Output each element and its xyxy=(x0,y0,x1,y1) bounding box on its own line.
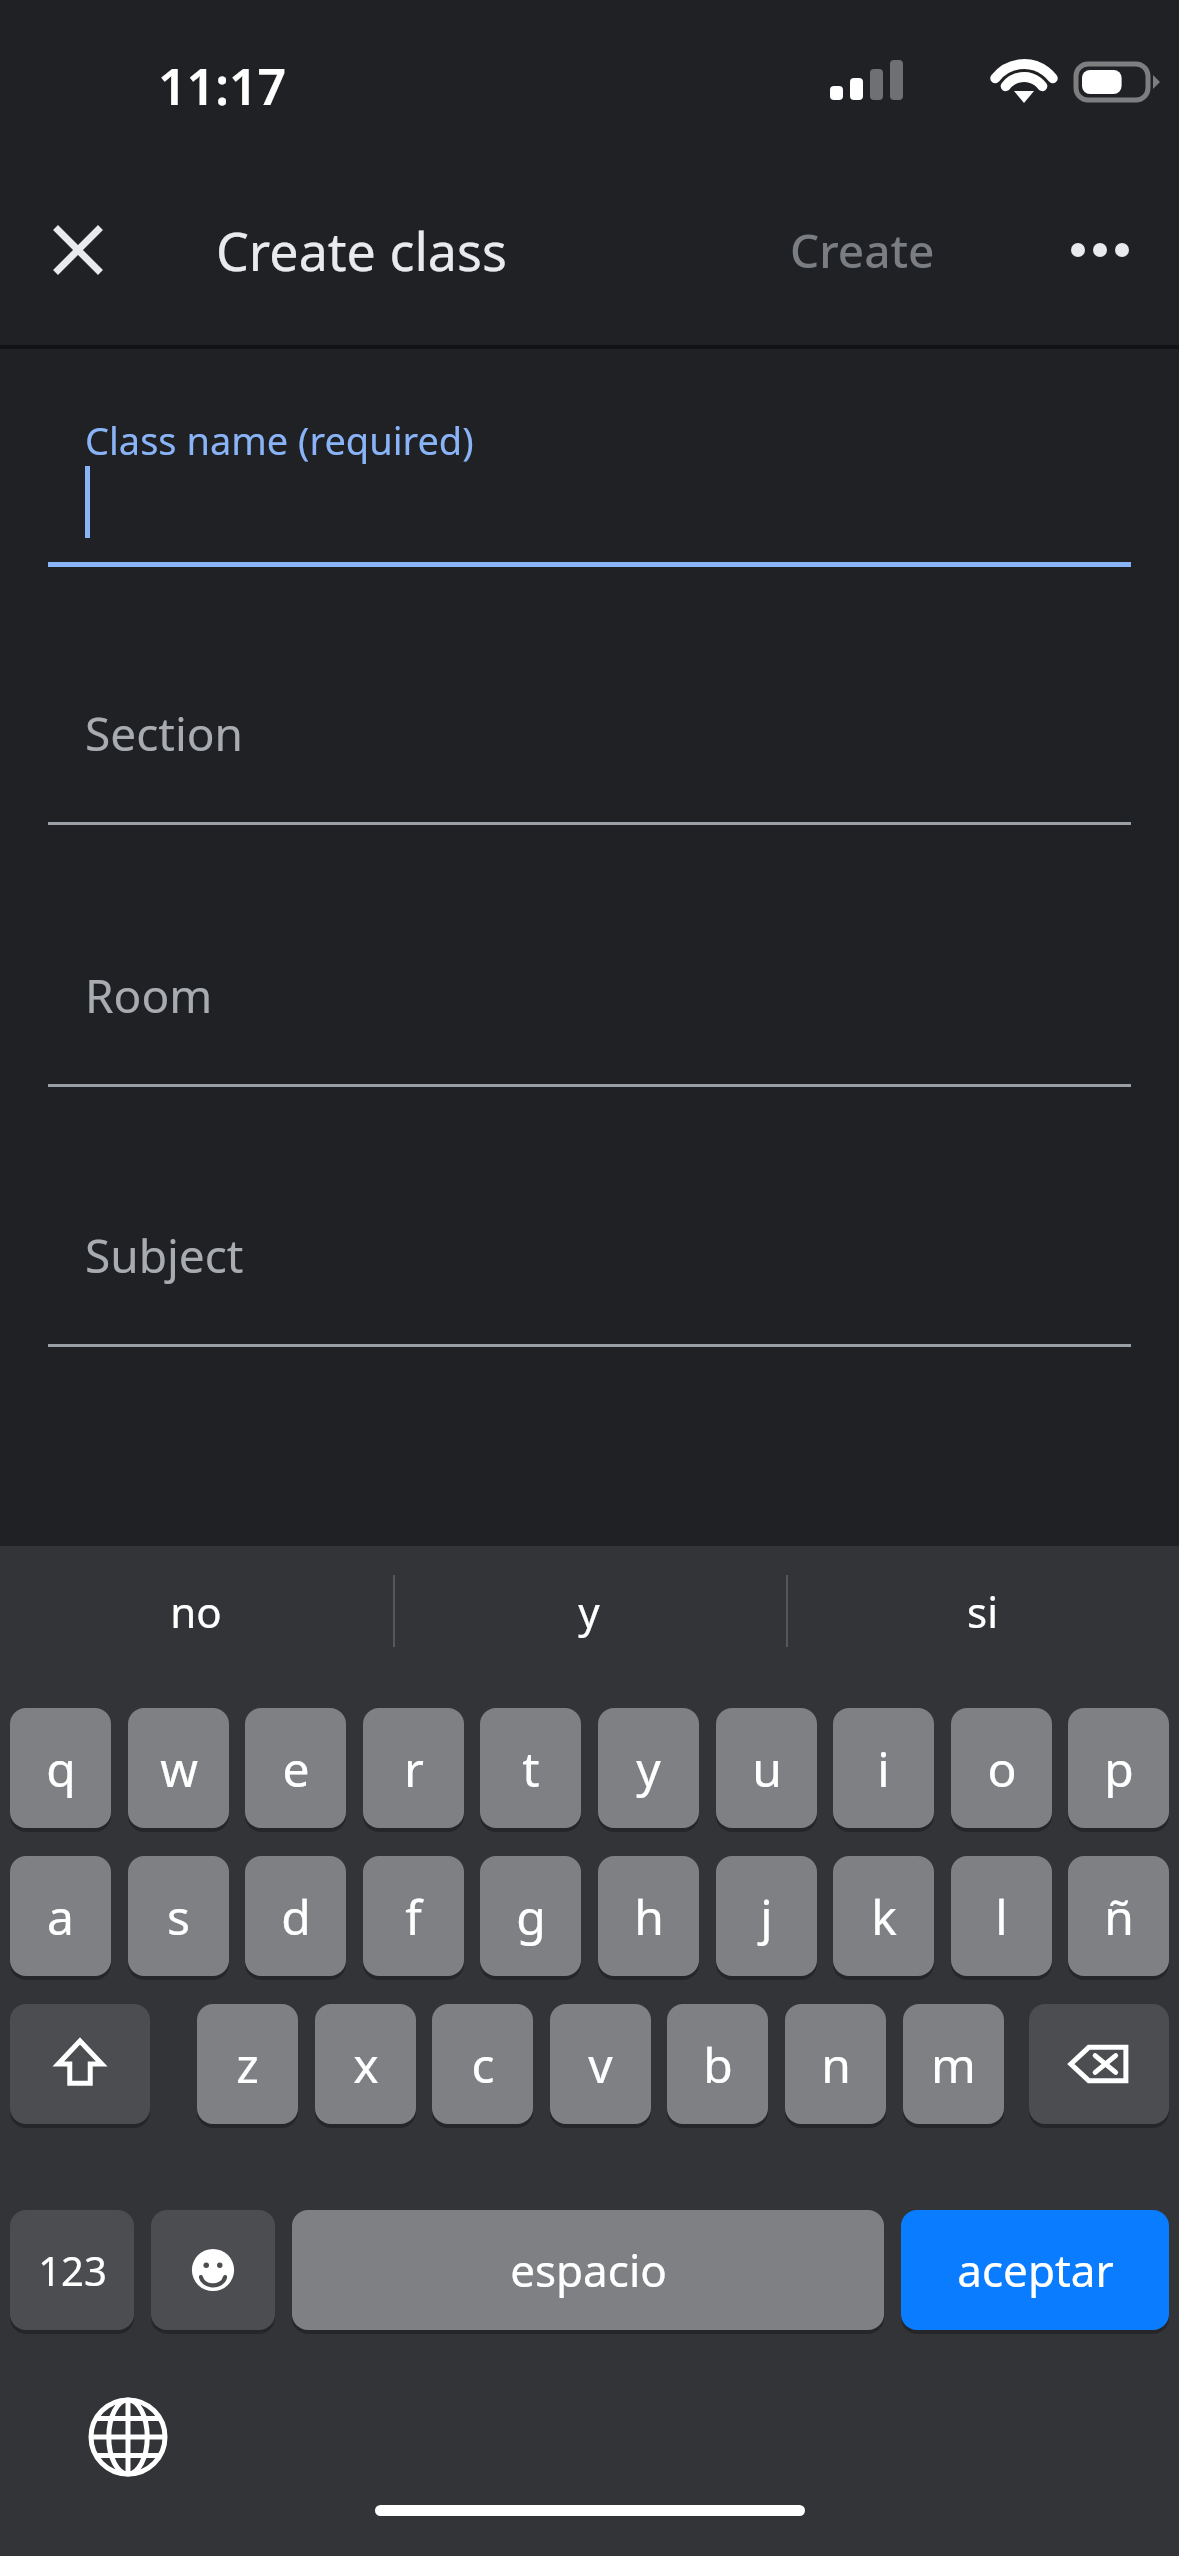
staticText: g xyxy=(516,1884,546,1949)
button[interactable]: Create xyxy=(790,200,970,300)
button[interactable]: s xyxy=(128,1856,229,1976)
staticText: d xyxy=(281,1884,311,1949)
button[interactable]: x xyxy=(315,2004,416,2124)
button[interactable] xyxy=(48,1162,1131,1364)
button[interactable]: q xyxy=(10,1708,111,1828)
staticText: v xyxy=(588,2032,613,2097)
button[interactable]: u xyxy=(716,1708,817,1828)
staticText: ñ xyxy=(1104,1884,1134,1949)
button[interactable] xyxy=(48,640,1131,842)
button[interactable]: Backspace xyxy=(1029,2004,1169,2124)
staticText: 11:17 xyxy=(158,52,287,112)
button[interactable]: r xyxy=(363,1708,464,1828)
button[interactable]: j xyxy=(716,1856,817,1976)
staticText: k xyxy=(871,1884,897,1949)
button[interactable]: y xyxy=(598,1708,699,1828)
button[interactable]: Shift xyxy=(10,2004,150,2124)
staticText: espacio xyxy=(510,2240,667,2300)
button[interactable]: ñ xyxy=(1068,1856,1169,1976)
staticText: Room xyxy=(85,964,213,1027)
staticText: p xyxy=(1104,1736,1134,1801)
button[interactable]: Emoji xyxy=(151,2210,275,2330)
staticText: c xyxy=(471,2032,495,2097)
staticText: x xyxy=(353,2032,379,2097)
button[interactable]: p xyxy=(1068,1708,1169,1828)
staticText: a xyxy=(47,1884,74,1949)
button[interactable]: d xyxy=(245,1856,346,1976)
staticText: q xyxy=(46,1736,76,1801)
button[interactable]: h xyxy=(598,1856,699,1976)
staticText: f xyxy=(405,1884,422,1949)
button[interactable]: aceptar xyxy=(901,2210,1169,2330)
button[interactable]: m xyxy=(903,2004,1004,2124)
staticText: l xyxy=(995,1884,1008,1949)
staticText: h xyxy=(634,1884,664,1949)
button[interactable]: l xyxy=(951,1856,1052,1976)
staticText: 123 xyxy=(38,2243,107,2297)
staticText: o xyxy=(987,1736,1017,1801)
staticText: i xyxy=(877,1736,890,1801)
button[interactable]: e xyxy=(245,1708,346,1828)
staticText: j xyxy=(760,1884,773,1949)
staticText: z xyxy=(236,2032,259,2097)
button[interactable]: b xyxy=(667,2004,768,2124)
staticText: s xyxy=(167,1884,190,1949)
button[interactable]: v xyxy=(550,2004,651,2124)
staticText: si xyxy=(967,1583,998,1640)
staticText: y xyxy=(636,1736,661,1801)
button[interactable]: a xyxy=(10,1856,111,1976)
button[interactable]: Close xyxy=(28,200,128,300)
button[interactable]: no xyxy=(16,1556,376,1666)
staticText: b xyxy=(703,2032,733,2097)
button[interactable]: espacio xyxy=(292,2210,884,2330)
button[interactable]: n xyxy=(785,2004,886,2124)
button[interactable]: f xyxy=(363,1856,464,1976)
staticText: t xyxy=(522,1736,540,1801)
staticText: e xyxy=(282,1736,310,1801)
button[interactable]: c xyxy=(432,2004,533,2124)
button[interactable]: i xyxy=(833,1708,934,1828)
staticText: Section xyxy=(85,702,244,765)
staticText: Class name (required) xyxy=(85,414,474,466)
staticText: w xyxy=(160,1736,198,1801)
staticText: u xyxy=(752,1736,782,1801)
staticText: r xyxy=(404,1736,424,1801)
button[interactable]: g xyxy=(480,1856,581,1976)
button[interactable]: o xyxy=(951,1708,1052,1828)
button[interactable]: si xyxy=(802,1556,1162,1666)
staticText: Create class xyxy=(216,215,507,286)
staticText: no xyxy=(170,1583,222,1640)
button[interactable]: k xyxy=(833,1856,934,1976)
staticText: y xyxy=(578,1583,600,1640)
button[interactable]: y xyxy=(409,1556,769,1666)
button[interactable]: 123 xyxy=(10,2210,134,2330)
button[interactable]: t xyxy=(480,1708,581,1828)
button[interactable]: Change keyboard language xyxy=(68,2377,188,2497)
button[interactable]: w xyxy=(128,1708,229,1828)
staticText: n xyxy=(821,2032,851,2097)
button[interactable]: z xyxy=(197,2004,298,2124)
staticText: aceptar xyxy=(957,2240,1114,2300)
staticText: Create xyxy=(790,219,935,282)
button[interactable]: Class name (required) xyxy=(48,400,1131,570)
staticText: Subject xyxy=(85,1224,244,1287)
button[interactable]: More options xyxy=(1050,200,1150,300)
staticText: m xyxy=(931,2032,976,2097)
button[interactable] xyxy=(48,902,1131,1104)
